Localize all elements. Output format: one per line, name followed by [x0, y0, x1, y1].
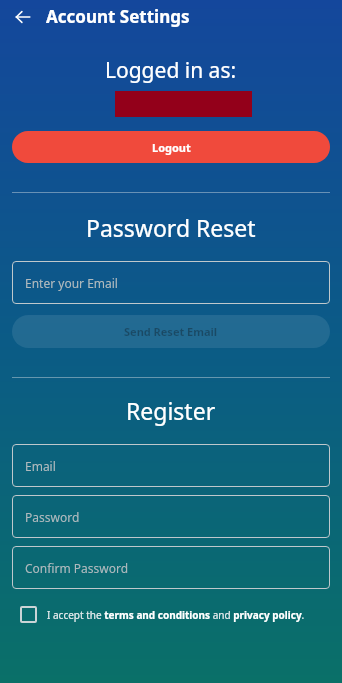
staticText: Logged in as: [105, 56, 237, 85]
staticText: I accept the terms and conditions and pr… [47, 608, 305, 622]
staticText: Password [25, 509, 80, 525]
button[interactable]: I accept the terms and conditions and pr… [20, 606, 330, 623]
button[interactable]: Confirm Password [12, 546, 330, 589]
staticText: Logout [152, 140, 191, 155]
staticText: Send Reset Email [124, 324, 218, 339]
staticText: Confirm Password [25, 560, 129, 576]
button[interactable]: Back [8, 2, 38, 32]
staticText: Account Settings [46, 5, 190, 28]
staticText: Enter your Email [25, 275, 118, 291]
staticText: Email [25, 458, 56, 474]
button[interactable]: Email [12, 444, 330, 487]
button[interactable]: Password [12, 495, 330, 538]
button[interactable]: Enter your Email [12, 261, 330, 304]
staticText: Password Reset [86, 212, 256, 243]
button[interactable]: Send Reset Email [12, 315, 330, 348]
staticText: Register [126, 395, 216, 426]
button[interactable]: Logout [12, 131, 330, 163]
